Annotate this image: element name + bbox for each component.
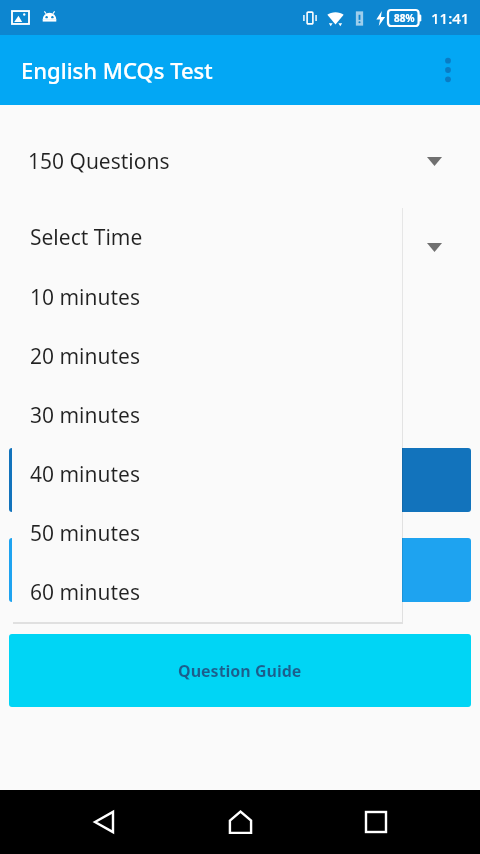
button[interactable]: 150 Questions — [0, 131, 480, 191]
staticText: 88% — [394, 11, 415, 25]
button[interactable]: 30 minutes — [12, 386, 402, 445]
button[interactable]: 60 minutes — [12, 563, 402, 622]
button[interactable]: 20 minutes — [12, 327, 402, 386]
staticText: 50 minutes — [30, 519, 140, 548]
staticText: 10 minutes — [30, 283, 140, 312]
button[interactable] — [9, 448, 471, 512]
button[interactable]: Recent apps — [344, 790, 408, 854]
staticText: Select Time — [30, 223, 143, 252]
button[interactable]: More options — [424, 46, 472, 94]
button[interactable]: 40 minutes — [12, 445, 402, 504]
button[interactable]: Question Guide — [9, 634, 471, 707]
button[interactable]: 50 minutes — [12, 504, 402, 563]
staticText: 150 Questions — [28, 147, 170, 176]
button[interactable]: Home — [208, 790, 272, 854]
staticText: 40 minutes — [30, 460, 140, 489]
staticText: 11:41 — [431, 8, 470, 28]
button[interactable] — [0, 217, 480, 277]
button[interactable]: 10 minutes — [12, 268, 402, 327]
staticText: Question Guide — [178, 660, 302, 682]
button[interactable] — [9, 538, 471, 602]
staticText: 20 minutes — [30, 342, 140, 371]
staticText: 60 minutes — [30, 578, 140, 607]
staticText: 30 minutes — [30, 401, 140, 430]
staticText: English MCQs Test — [21, 55, 213, 85]
button[interactable]: Back — [72, 790, 136, 854]
button[interactable]: Select Time — [12, 206, 402, 268]
